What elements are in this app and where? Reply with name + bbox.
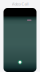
staticText: Video Call: [11, 1, 28, 7]
